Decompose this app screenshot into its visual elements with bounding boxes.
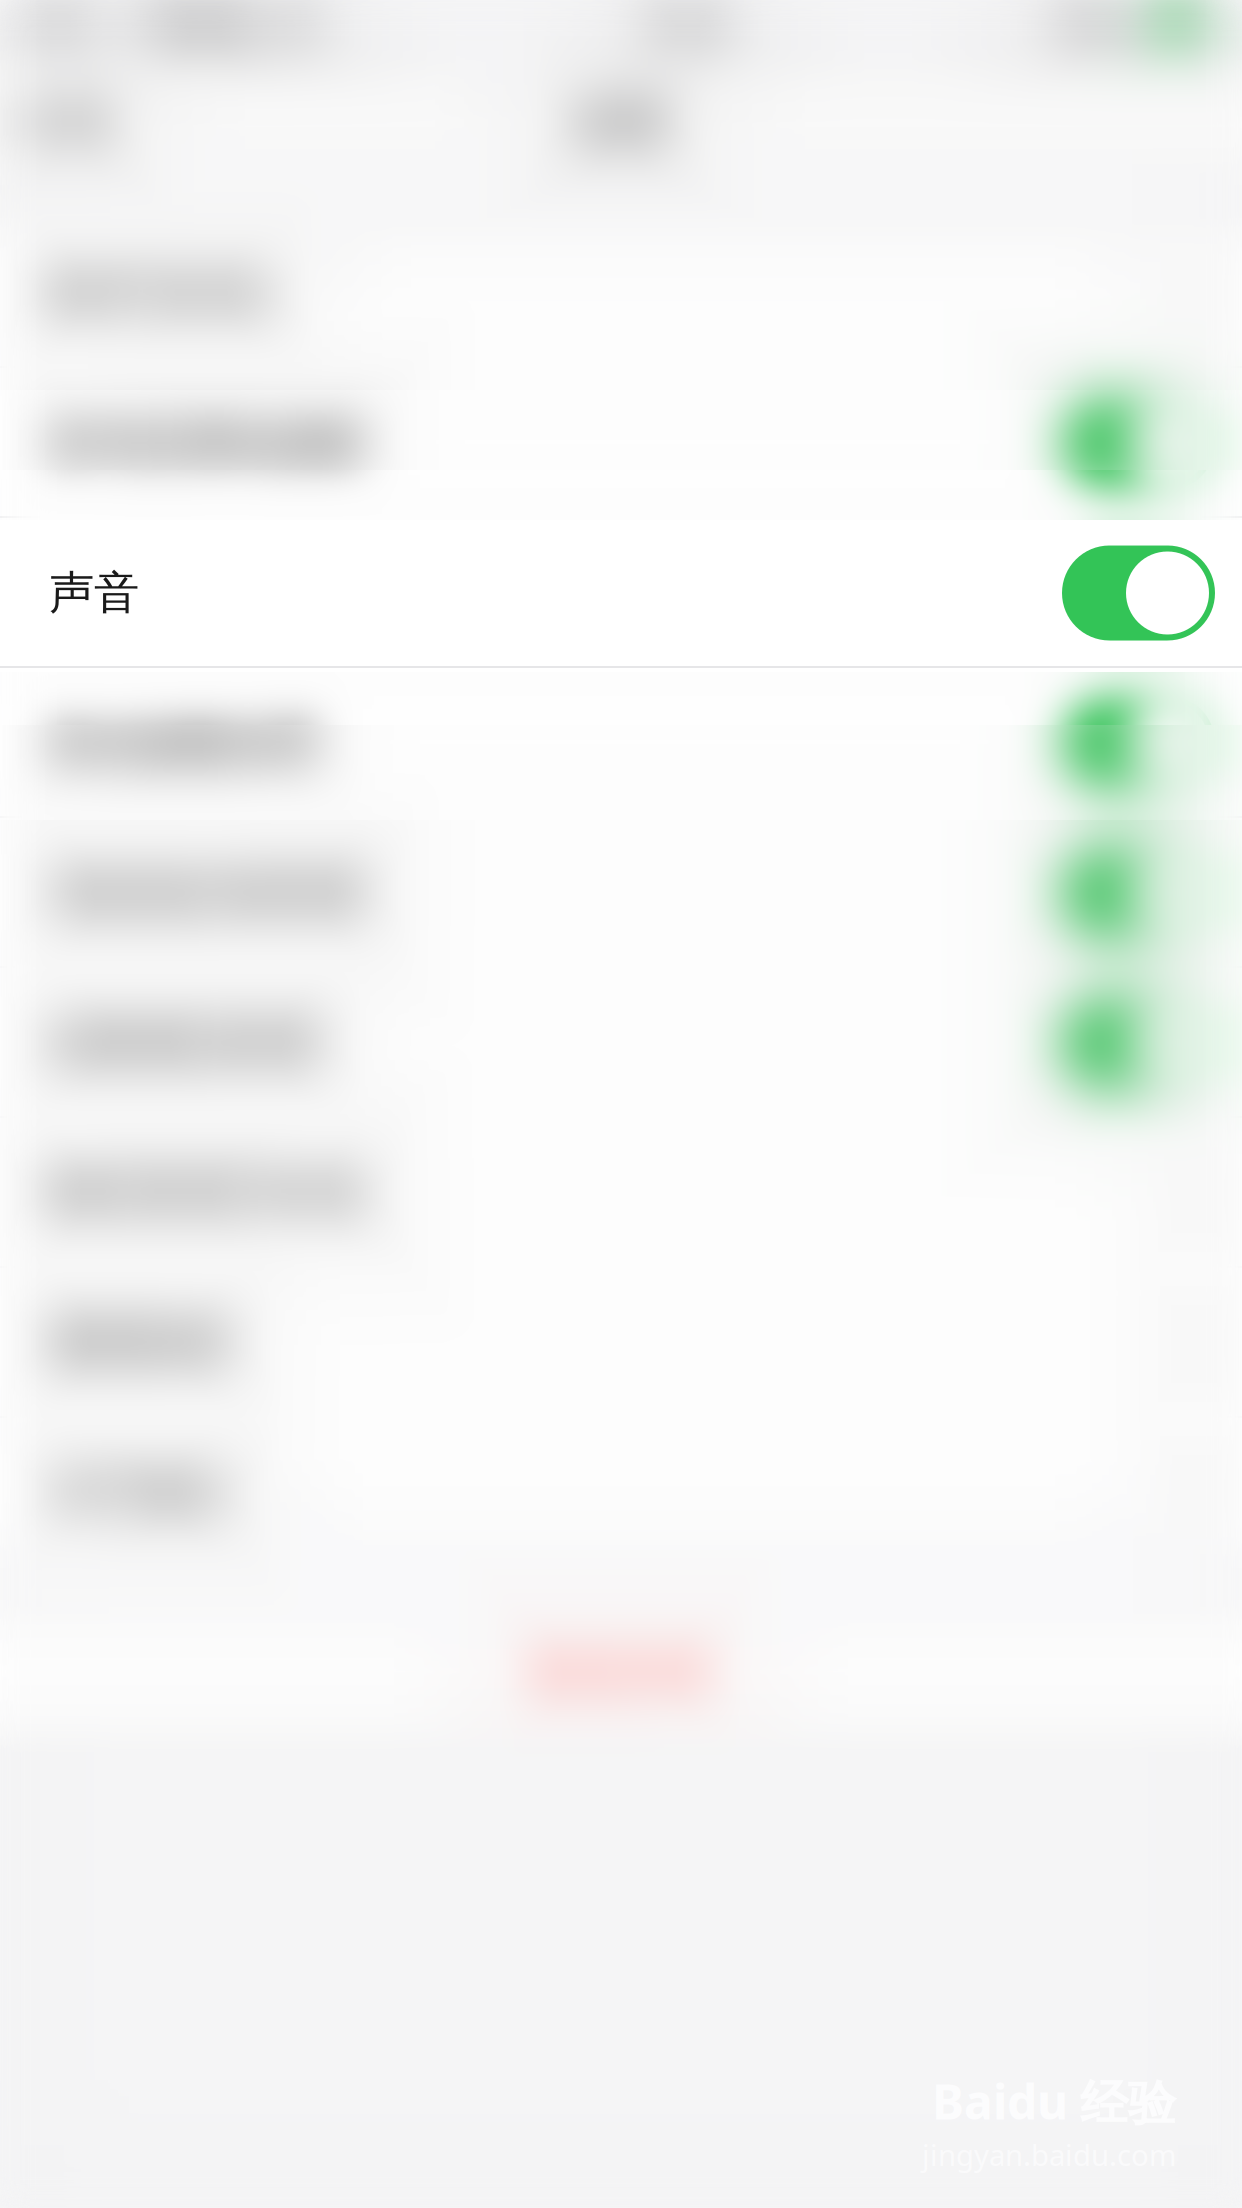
button[interactable]: 关于我们 [0,1418,1242,1568]
staticText: 振动提醒设置 [49,715,319,771]
button[interactable]: 振动提醒设置 [0,668,1242,818]
staticText: 我 [66,96,109,149]
staticText: 中国移动 4G [121,10,319,50]
staticText: 聊天背景与字体 [49,1165,364,1221]
button[interactable]: 消息免打扰设置 [0,818,1242,968]
button[interactable]: 退出登录 [0,1600,1242,1745]
button[interactable]: 聊天背景与字体 [0,1118,1242,1268]
button[interactable]: 新消息通知提醒 [0,368,1242,518]
button[interactable]: 返回 [0,60,135,185]
staticText: 账号与安全 [49,265,274,321]
staticText: 消息免打扰设置 [49,865,364,921]
staticText: 新消息通知提醒 [49,415,364,471]
staticText: Baidu 经验 [932,2069,1176,2133]
button[interactable]: 声音 [0,518,1242,668]
button[interactable]: 账号与安全 [0,218,1242,368]
staticText: 设置 [573,93,669,152]
staticText: 100% [1048,10,1143,50]
button[interactable]: 通用设置 [0,1268,1242,1418]
staticText: 退出登录 [531,1645,711,1700]
staticText: 勿扰模式设置 [49,1015,319,1071]
staticText: 关于我们 [49,1465,229,1521]
staticText: 声音 [49,565,139,621]
button[interactable]: 勿扰模式设置 [0,968,1242,1118]
staticText: 通用设置 [49,1315,229,1371]
